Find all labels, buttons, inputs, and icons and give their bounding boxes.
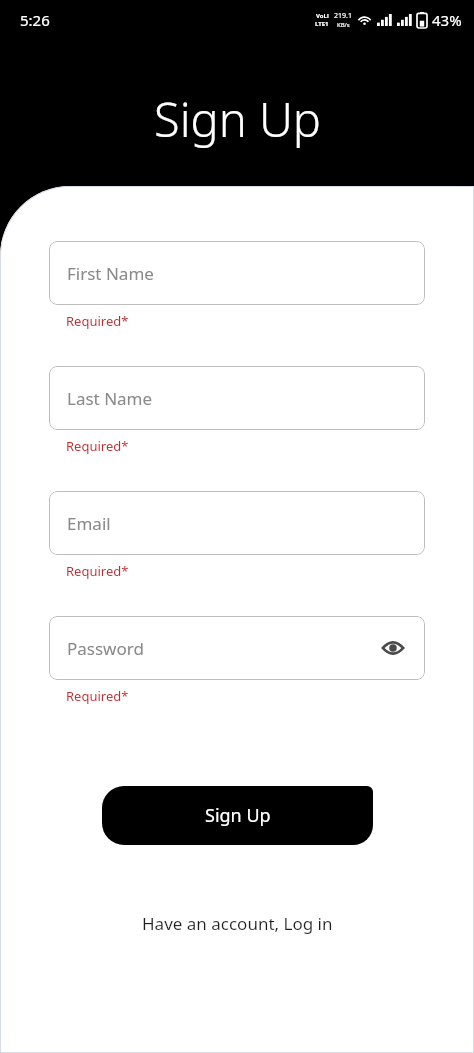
staticText: Password <box>67 637 144 660</box>
staticText: 219.1 <box>334 11 352 21</box>
staticText: Email <box>67 512 111 535</box>
button[interactable]: Password <box>49 616 425 680</box>
button[interactable]: Show password <box>373 628 413 668</box>
staticText: First Name <box>67 262 154 285</box>
button[interactable]: Sign Up <box>102 786 373 845</box>
staticText: LTE1 <box>315 20 329 28</box>
button[interactable]: Email <box>49 491 425 555</box>
staticText: Required* <box>66 437 129 455</box>
staticText: 43% <box>432 10 462 30</box>
staticText: Required* <box>66 687 129 705</box>
staticText: KB/s <box>337 21 350 29</box>
button[interactable]: Have an account, Log in <box>130 906 345 941</box>
staticText: 5:26 <box>20 10 50 30</box>
staticText: Have an account, Log in <box>142 912 333 935</box>
staticText: Sign Up <box>205 803 271 828</box>
staticText: Sign Up <box>154 87 321 151</box>
staticText: Last Name <box>67 387 153 410</box>
staticText: VoLl <box>316 12 329 20</box>
staticText: Required* <box>66 312 129 330</box>
button[interactable]: Last Name <box>49 366 425 430</box>
staticText: Required* <box>66 562 129 580</box>
button[interactable]: First Name <box>49 241 425 305</box>
